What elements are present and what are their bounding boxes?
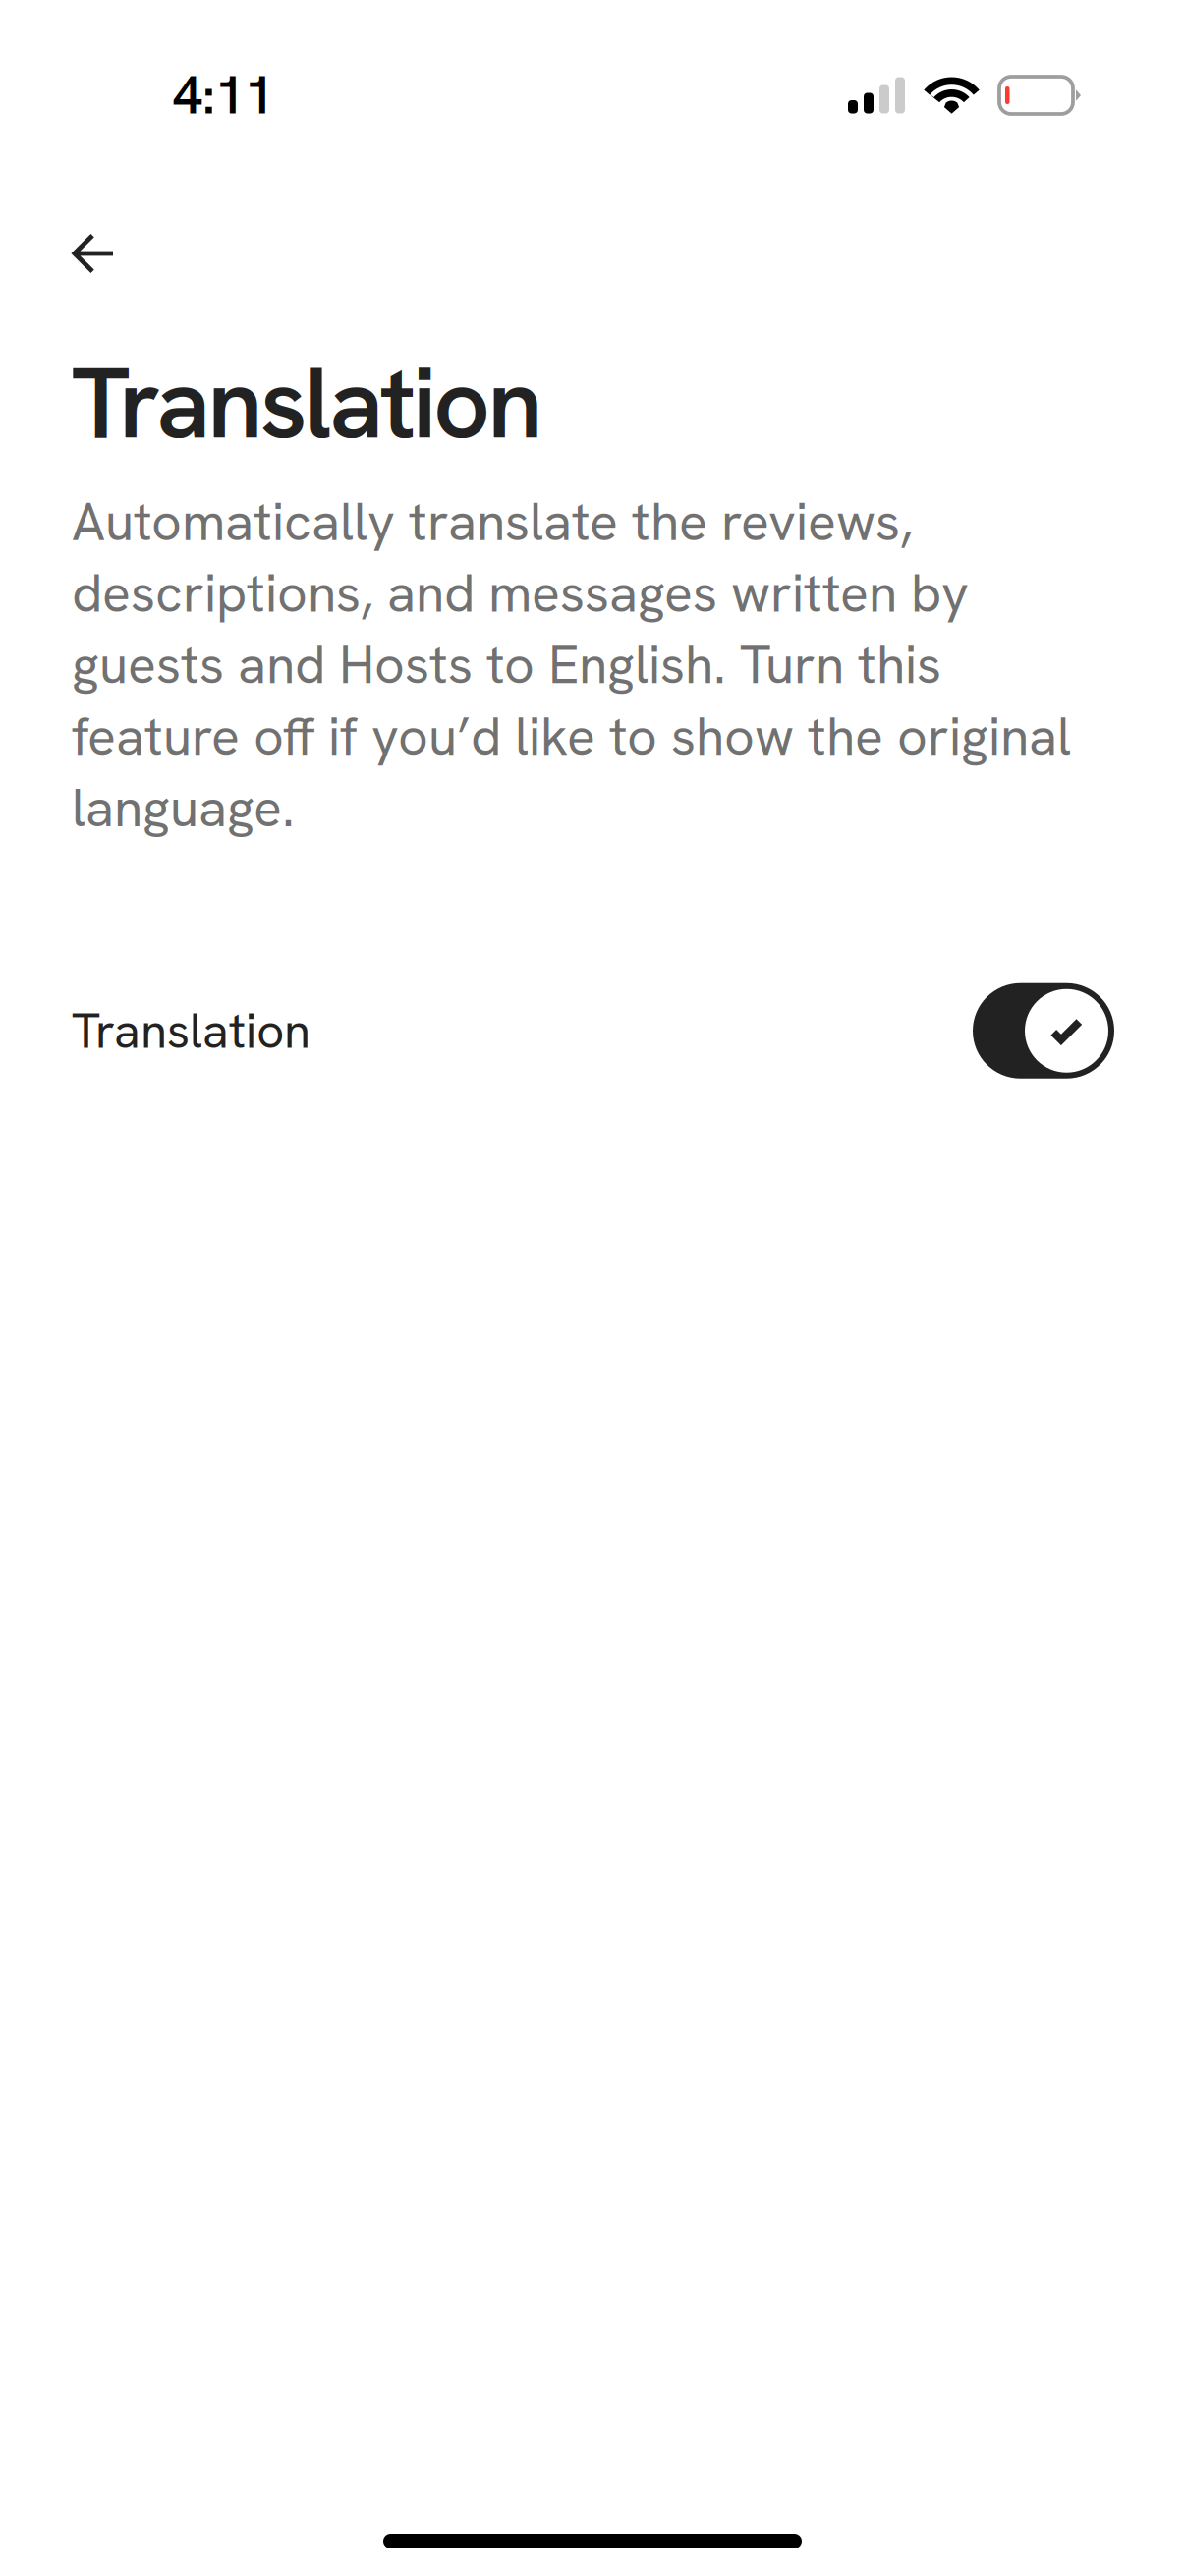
staticText: Translation [72,338,543,468]
staticText: 4:11 [173,61,274,129]
staticText: Translation [72,999,310,1062]
button[interactable]: Back [0,194,226,313]
button[interactable]: Translation [0,952,1185,1109]
staticText: Automatically translate the reviews, des… [72,487,1071,842]
